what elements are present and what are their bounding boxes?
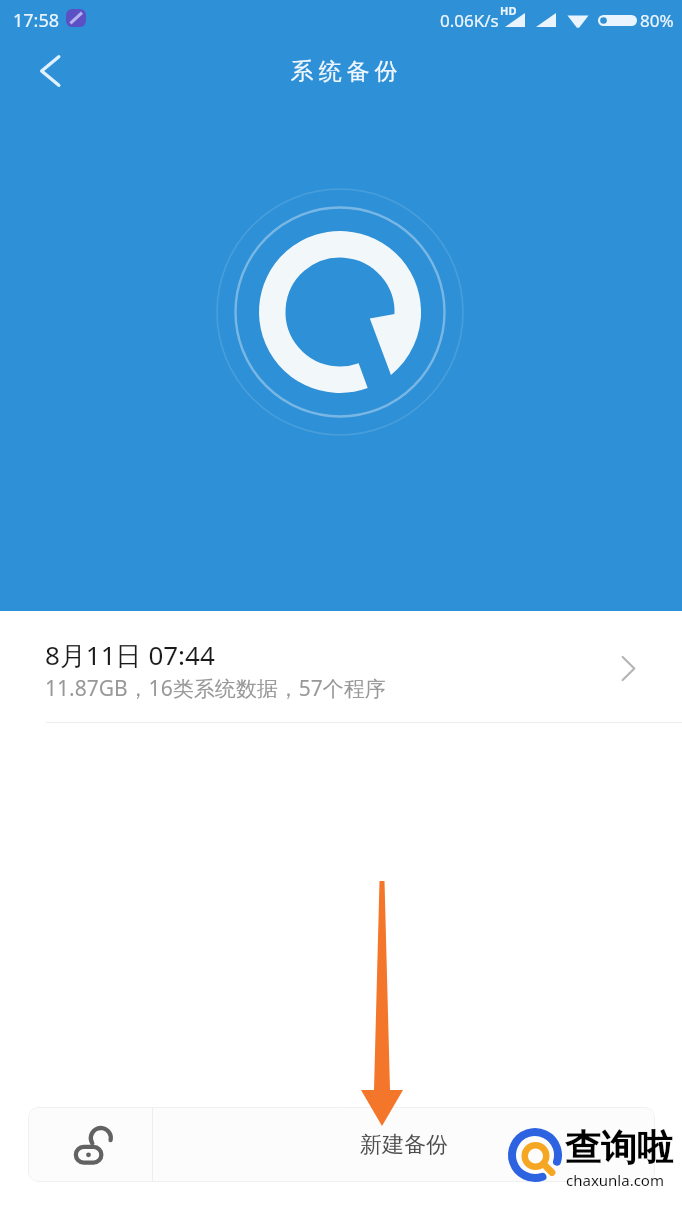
staticText: HD bbox=[500, 3, 517, 18]
button[interactable]: 新建备份 bbox=[153, 1107, 655, 1182]
button[interactable]: Unlock bbox=[28, 1107, 152, 1182]
staticText: 0.06K/s bbox=[440, 9, 499, 32]
button[interactable]: 8月11日 07:44 bbox=[0, 611, 682, 723]
staticText: 新建备份 bbox=[360, 1131, 448, 1159]
staticText: 11.87GB，16类系统数据，57个程序 bbox=[45, 674, 386, 703]
staticText: 系统备份 bbox=[288, 57, 400, 86]
staticText: chaxunla.com bbox=[566, 1170, 664, 1190]
staticText: 80% bbox=[640, 9, 674, 32]
staticText: 17:58 bbox=[13, 8, 60, 33]
staticText: 查询啦 bbox=[565, 1125, 673, 1170]
button[interactable]: Back bbox=[28, 49, 72, 93]
staticText: 8月11日 07:44 bbox=[45, 637, 215, 673]
